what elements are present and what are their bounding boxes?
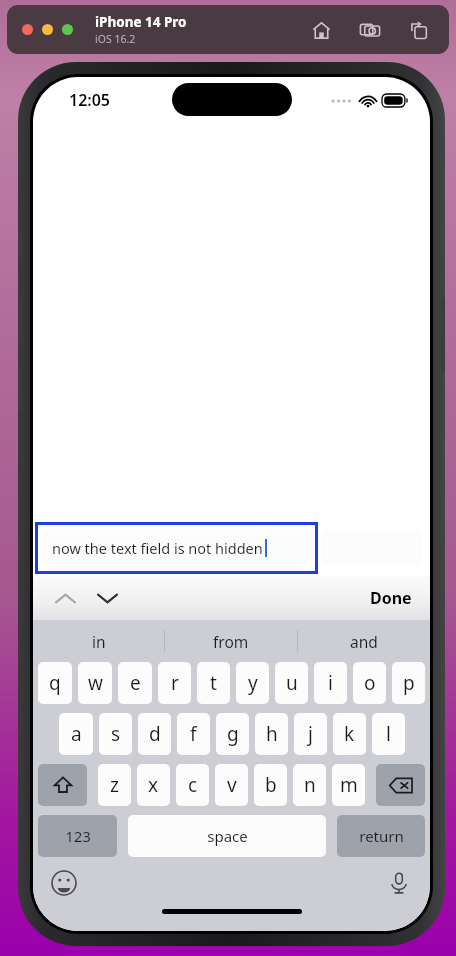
button[interactable]: g bbox=[216, 713, 249, 755]
staticText: i bbox=[328, 670, 333, 696]
staticText: g bbox=[227, 721, 239, 747]
button[interactable]: i bbox=[314, 662, 347, 704]
staticText: l bbox=[386, 721, 391, 747]
staticText: f bbox=[190, 721, 197, 747]
staticText: b bbox=[265, 772, 277, 798]
button[interactable]: p bbox=[392, 662, 425, 704]
button[interactable]: v bbox=[215, 764, 248, 806]
button[interactable]: from bbox=[165, 620, 297, 662]
staticText: q bbox=[49, 670, 61, 696]
button[interactable]: l bbox=[372, 713, 405, 755]
button[interactable]: Previous field bbox=[47, 580, 83, 616]
staticText: 123 bbox=[65, 826, 91, 846]
staticText: in bbox=[92, 631, 106, 652]
button[interactable]: y bbox=[236, 662, 269, 704]
button[interactable]: m bbox=[332, 764, 365, 806]
staticText: from bbox=[213, 631, 249, 652]
button[interactable] bbox=[42, 24, 53, 35]
button[interactable] bbox=[22, 24, 33, 35]
button[interactable]: u bbox=[275, 662, 308, 704]
staticText: z bbox=[110, 772, 119, 798]
button[interactable]: Backspace bbox=[376, 764, 425, 806]
button[interactable]: z bbox=[98, 764, 131, 806]
button[interactable]: o bbox=[353, 662, 386, 704]
button[interactable]: Shift bbox=[38, 764, 87, 806]
button[interactable]: Home bbox=[306, 15, 336, 45]
staticText: space bbox=[207, 826, 248, 846]
button[interactable]: Dictation bbox=[382, 866, 416, 900]
staticText: y bbox=[248, 670, 258, 696]
button[interactable]: k bbox=[333, 713, 366, 755]
staticText: h bbox=[266, 721, 278, 747]
staticText: u bbox=[286, 670, 298, 696]
button[interactable]: and bbox=[298, 620, 430, 662]
button[interactable]: s bbox=[99, 713, 132, 755]
button[interactable]: d bbox=[138, 713, 171, 755]
button[interactable]: Next field bbox=[89, 580, 125, 616]
staticText: v bbox=[227, 772, 237, 798]
staticText: now the text field is not hidden bbox=[52, 538, 263, 558]
staticText: 12:05 bbox=[69, 89, 111, 111]
staticText: c bbox=[188, 772, 198, 798]
button[interactable]: n bbox=[293, 764, 326, 806]
button[interactable]: Done bbox=[360, 581, 422, 615]
staticText: and bbox=[350, 631, 378, 652]
button[interactable]: Emoji bbox=[47, 866, 81, 900]
button[interactable]: a bbox=[59, 713, 93, 755]
staticText: x bbox=[148, 772, 159, 798]
staticText: p bbox=[403, 670, 415, 696]
button[interactable]: in bbox=[33, 620, 164, 662]
button[interactable]: f bbox=[177, 713, 210, 755]
staticText: iOS 16.2 bbox=[95, 32, 136, 46]
staticText: t bbox=[210, 670, 217, 696]
staticText: a bbox=[71, 721, 82, 747]
staticText: d bbox=[149, 721, 161, 747]
button[interactable]: return bbox=[337, 815, 425, 857]
staticText: r bbox=[171, 670, 179, 696]
button[interactable]: e bbox=[118, 662, 152, 704]
button[interactable]: t bbox=[197, 662, 230, 704]
staticText: return bbox=[359, 826, 404, 846]
button[interactable]: Screenshot bbox=[355, 15, 385, 45]
button[interactable]: h bbox=[255, 713, 288, 755]
staticText: k bbox=[344, 721, 355, 747]
staticText: s bbox=[111, 721, 121, 747]
staticText: Done bbox=[370, 587, 412, 609]
button[interactable]: x bbox=[137, 764, 170, 806]
button[interactable]: w bbox=[78, 662, 112, 704]
button[interactable]: r bbox=[158, 662, 191, 704]
staticText: j bbox=[308, 721, 313, 747]
button[interactable] bbox=[62, 24, 73, 35]
button[interactable]: Rotate bbox=[404, 15, 434, 45]
button[interactable]: j bbox=[294, 713, 327, 755]
staticText: w bbox=[88, 670, 103, 696]
button[interactable]: 123 bbox=[38, 815, 117, 857]
staticText: o bbox=[364, 670, 376, 696]
staticText: e bbox=[130, 670, 141, 696]
button[interactable]: b bbox=[254, 764, 287, 806]
button[interactable]: c bbox=[176, 764, 209, 806]
staticText: m bbox=[340, 772, 358, 798]
staticText: n bbox=[304, 772, 316, 798]
button[interactable]: now the text field is not hidden bbox=[42, 529, 311, 567]
staticText: iPhone 14 Pro bbox=[95, 13, 187, 31]
button[interactable]: space bbox=[128, 815, 326, 857]
button[interactable]: q bbox=[38, 662, 72, 704]
